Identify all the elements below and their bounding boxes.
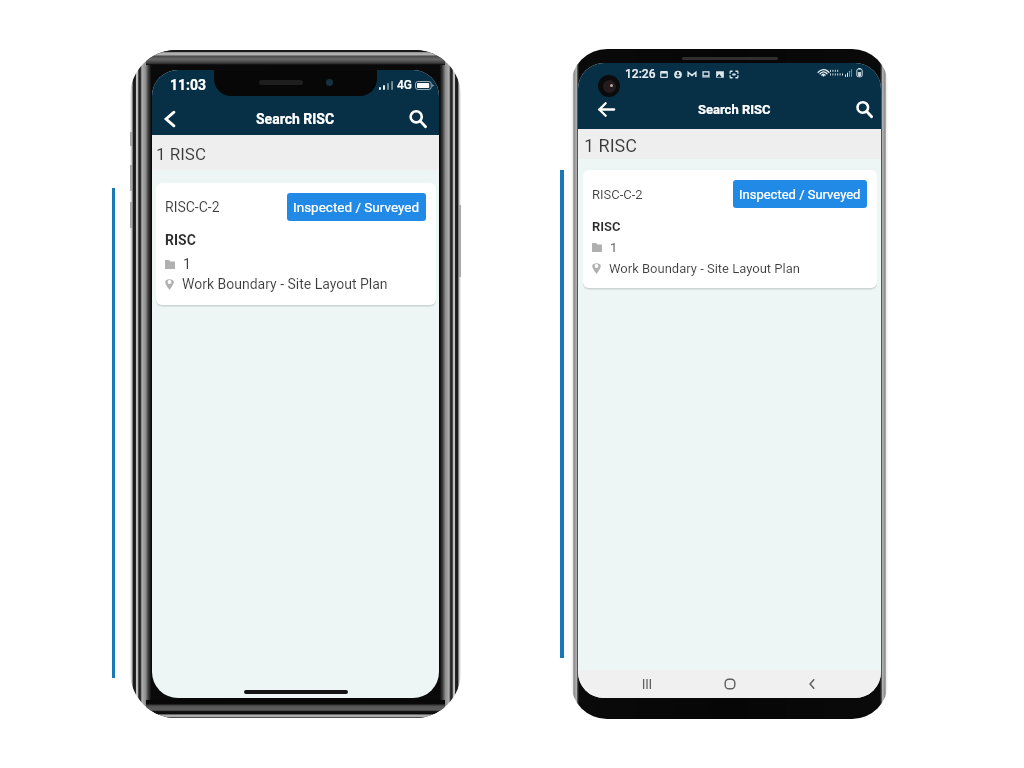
staticText: 11:03 <box>170 77 207 93</box>
staticText: Search RISC <box>698 102 771 117</box>
button[interactable]: Search <box>405 106 431 132</box>
button[interactable]: Recents <box>633 670 661 698</box>
staticText: 1 <box>183 256 191 272</box>
staticText: Work Boundary - Site Layout Plan <box>182 276 388 292</box>
staticText: 1 RISC <box>584 135 637 156</box>
button[interactable]: RISC-C-2 <box>156 183 436 305</box>
staticText: RISC <box>592 219 621 234</box>
staticText: 1 <box>610 240 618 255</box>
staticText: 1 RISC <box>156 144 207 164</box>
staticText: 12:26 <box>625 67 656 81</box>
staticText: RISC <box>165 232 196 248</box>
staticText: Work Boundary - Site Layout Plan <box>609 261 800 276</box>
button[interactable]: Inspected / Surveyed <box>733 180 867 208</box>
button[interactable]: RISC-C-2 <box>583 170 877 288</box>
button[interactable]: Back <box>593 96 619 122</box>
button[interactable]: Back <box>798 670 826 698</box>
staticText: Inspected / Surveyed <box>293 199 420 215</box>
staticText: RISC-C-2 <box>592 187 643 202</box>
button[interactable]: Search <box>851 96 877 122</box>
button[interactable]: Home <box>716 670 744 698</box>
staticText: RISC-C-2 <box>165 199 220 215</box>
button[interactable]: Inspected / Surveyed <box>287 193 426 221</box>
staticText: 4G <box>397 78 412 92</box>
staticText: Search RISC <box>256 111 335 127</box>
button[interactable]: Back <box>157 106 183 132</box>
staticText: Inspected / Surveyed <box>739 187 861 202</box>
